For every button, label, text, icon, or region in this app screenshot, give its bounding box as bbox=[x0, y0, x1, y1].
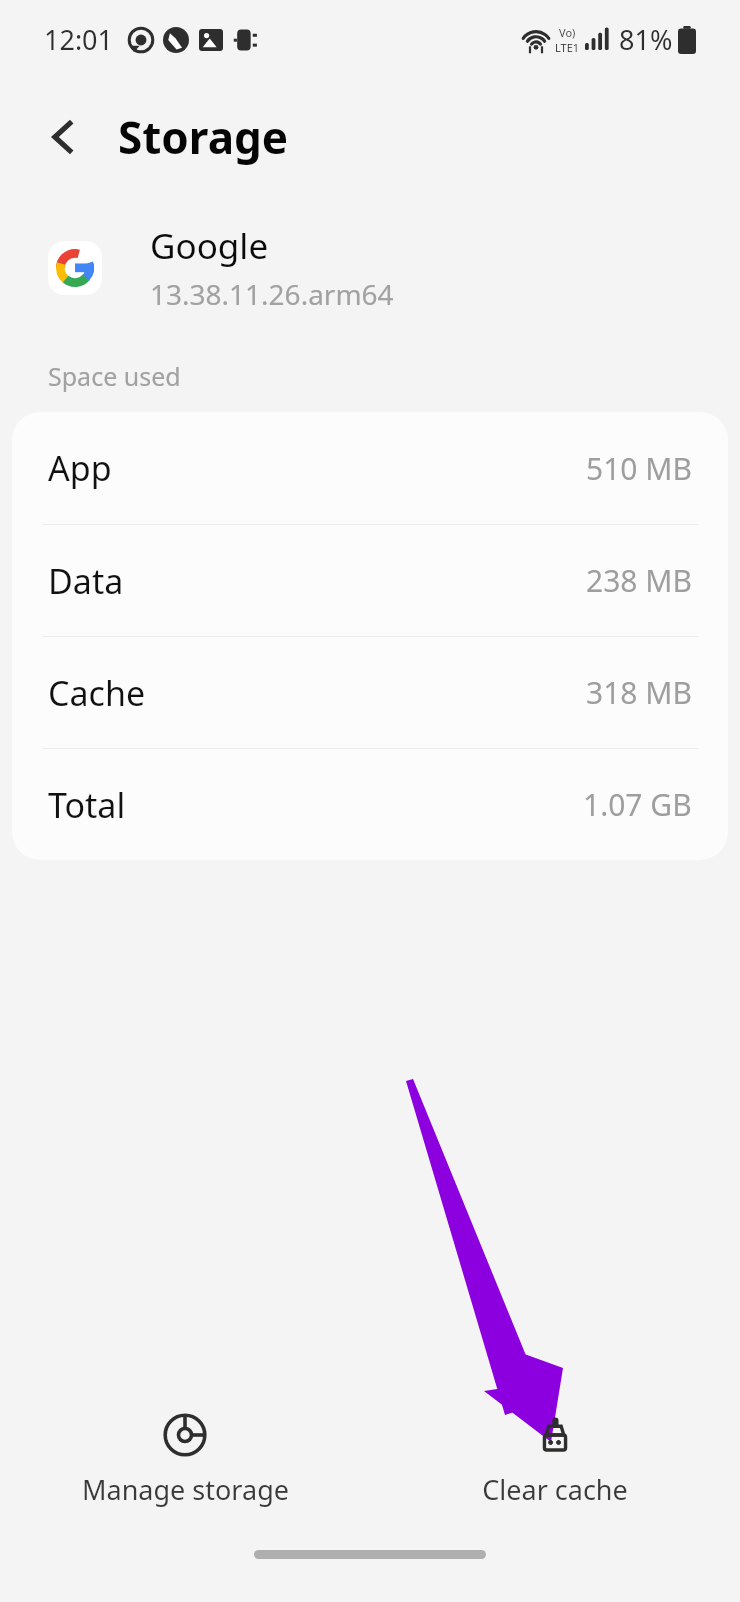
staticText: 12:01 bbox=[44, 21, 114, 58]
staticText: Clear cache bbox=[482, 1471, 628, 1508]
button[interactable]: App bbox=[12, 412, 728, 524]
staticText: 318 MB bbox=[586, 672, 692, 713]
button[interactable]: Google bbox=[48, 222, 740, 313]
button[interactable]: Total bbox=[12, 748, 728, 860]
staticText: Manage storage bbox=[82, 1471, 289, 1508]
staticText: 81% bbox=[619, 21, 673, 58]
button[interactable]: Manage storage bbox=[0, 1400, 370, 1520]
staticText: Space used bbox=[48, 359, 181, 393]
button[interactable]: Clear cache bbox=[370, 1400, 740, 1520]
staticText: 1.07 GB bbox=[583, 784, 692, 825]
staticText: Cache bbox=[48, 670, 146, 716]
staticText: Total bbox=[48, 782, 126, 828]
button[interactable]: Back bbox=[30, 104, 96, 170]
staticText: Google bbox=[150, 222, 269, 270]
staticText: 238 MB bbox=[586, 560, 692, 601]
button[interactable]: Cache bbox=[12, 636, 728, 748]
staticText: LTE1 bbox=[555, 40, 580, 55]
staticText: 13.38.11.26.arm64 bbox=[150, 275, 394, 313]
staticText: Vo) bbox=[559, 25, 576, 40]
staticText: App bbox=[48, 445, 112, 491]
button[interactable]: Data bbox=[12, 524, 728, 636]
staticText: Storage bbox=[118, 107, 289, 167]
staticText: 510 MB bbox=[586, 448, 692, 489]
staticText: Data bbox=[48, 558, 124, 604]
